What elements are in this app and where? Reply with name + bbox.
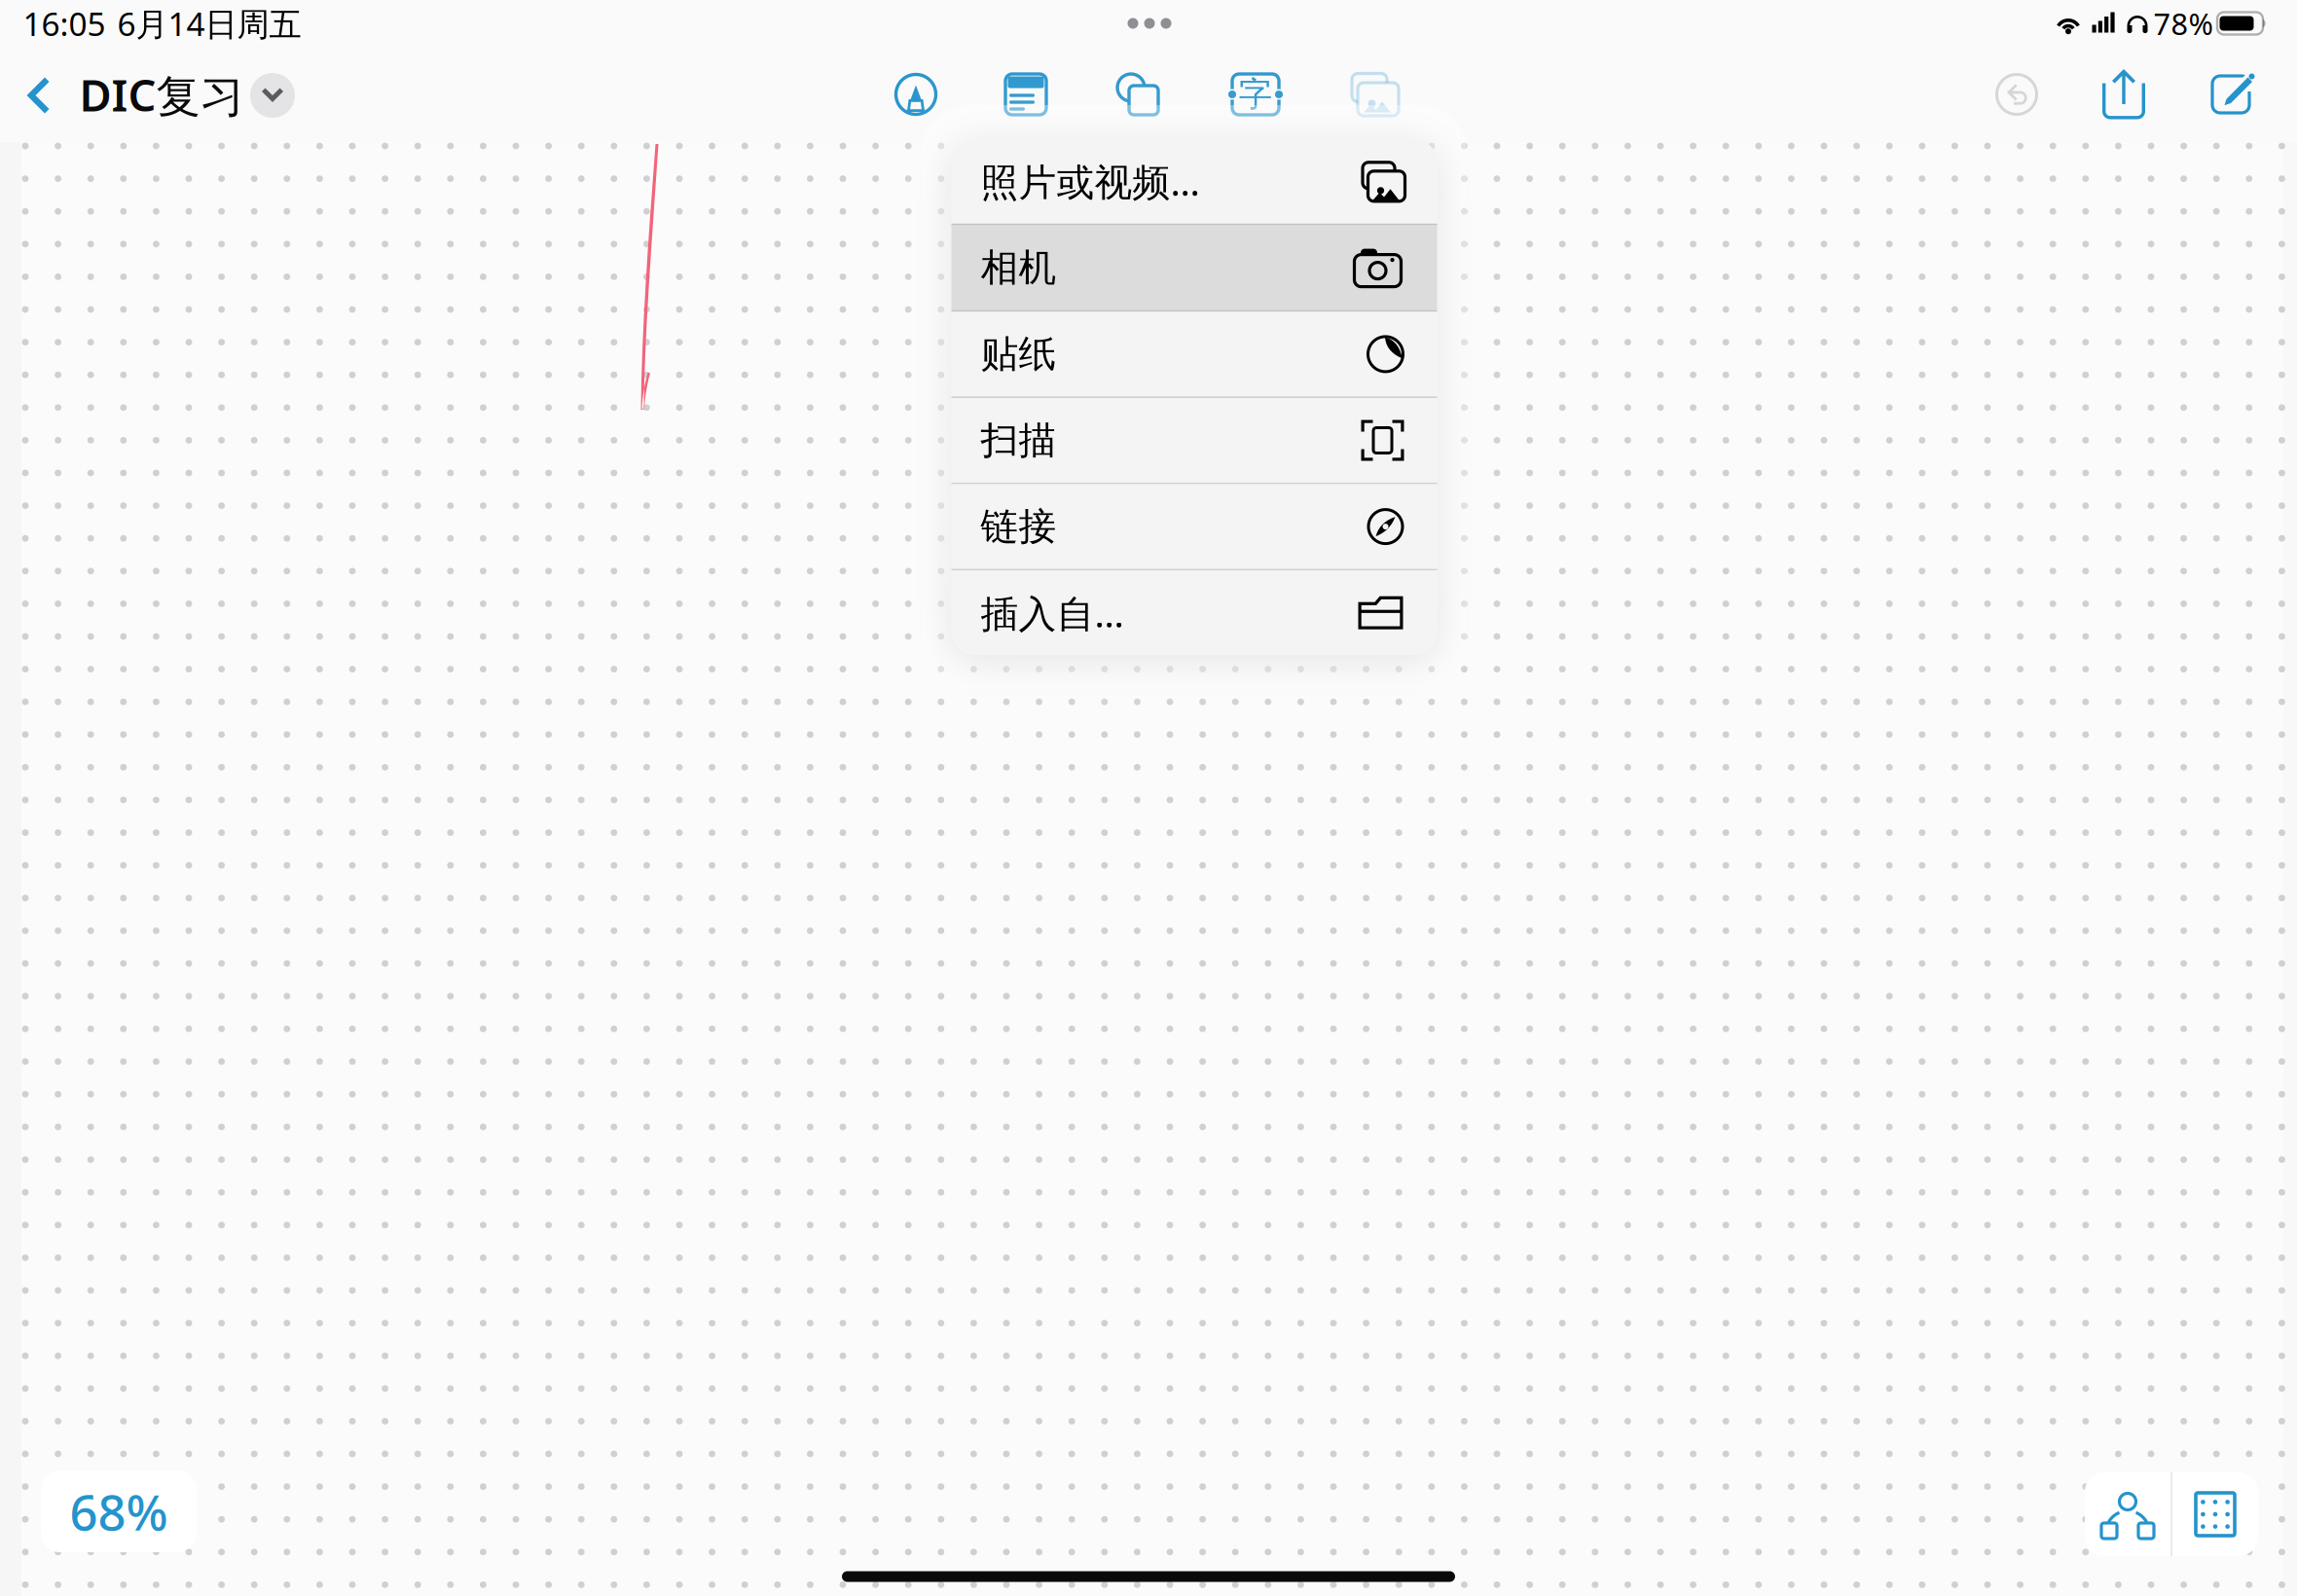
button[interactable]: Pen (877, 55, 955, 133)
button[interactable]: Page template (2172, 1472, 2258, 1556)
staticText: DIC复习 (79, 65, 244, 124)
button[interactable]: 扫描 (951, 398, 1437, 483)
button[interactable]: 68% (41, 1470, 197, 1552)
button[interactable]: Insert media (1335, 55, 1413, 133)
button[interactable]: 相机 (951, 225, 1437, 310)
staticText: 插入自... (981, 588, 1124, 638)
button[interactable]: Shapes (1099, 55, 1177, 133)
button[interactable]: Lasso select (2085, 1472, 2170, 1556)
staticText: 扫描 (981, 417, 1057, 464)
button[interactable]: Note (987, 55, 1065, 133)
staticText: 78% (2153, 4, 2213, 43)
button[interactable]: Share (2085, 54, 2163, 132)
staticText: 相机 (981, 245, 1057, 291)
button[interactable]: 插入自... (951, 570, 1437, 655)
staticText: 字 (1239, 74, 1273, 115)
staticText: 16:05 (23, 2, 106, 45)
button[interactable]: Compose (2196, 55, 2274, 133)
button[interactable]: Undo (1978, 55, 2056, 133)
button[interactable]: Document options (243, 66, 302, 125)
button[interactable]: 贴纸 (951, 312, 1437, 396)
button[interactable]: Text box (1217, 55, 1294, 133)
staticText: 链接 (981, 504, 1057, 550)
staticText: 68% (70, 1479, 168, 1544)
staticText: 贴纸 (981, 331, 1057, 377)
button[interactable]: 照片或视频... (951, 139, 1437, 224)
staticText: 照片或视频... (981, 156, 1200, 206)
button[interactable]: Back (3, 56, 73, 134)
staticText: 6月14日周五 (117, 2, 301, 45)
button[interactable]: 链接 (951, 484, 1437, 569)
